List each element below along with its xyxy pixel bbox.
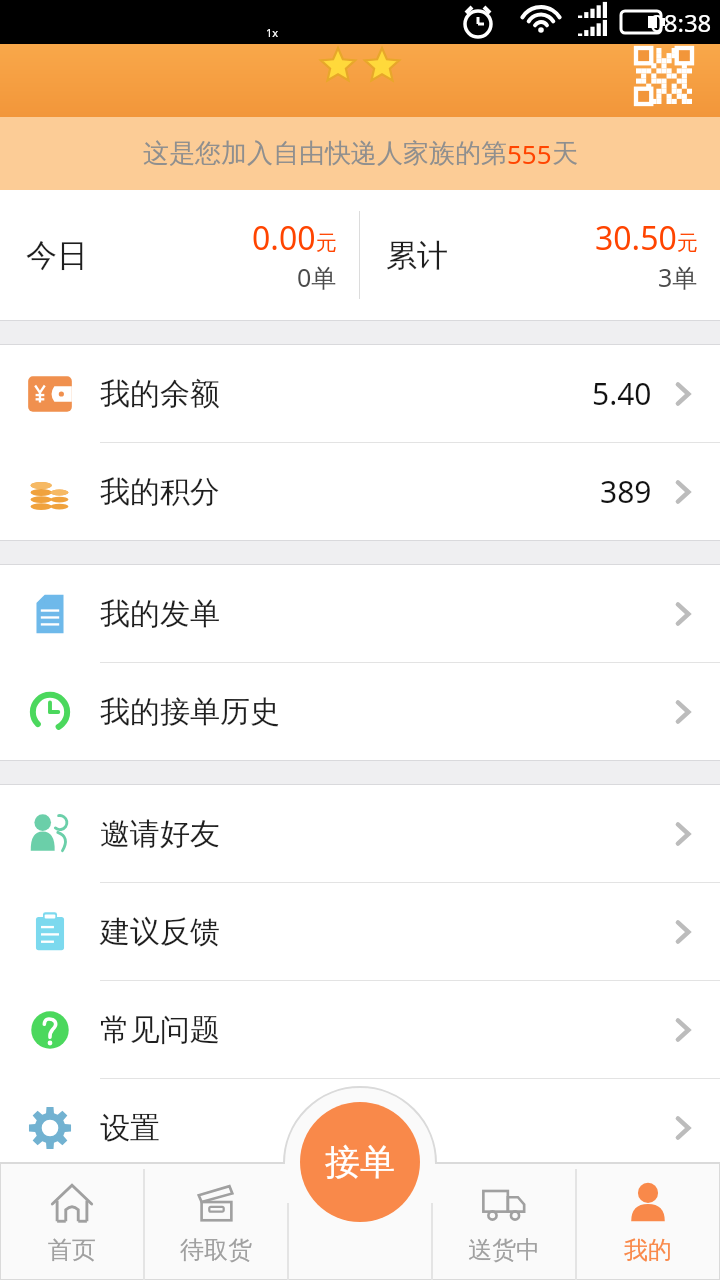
button[interactable]: 累计	[360, 190, 720, 320]
staticText: 累计	[386, 236, 448, 275]
staticText: 建议反馈	[100, 913, 220, 951]
button[interactable]: 送货中	[432, 1163, 576, 1280]
staticText: 首页	[48, 1235, 96, 1265]
staticText: 1x	[266, 25, 279, 40]
button[interactable]: 设置	[0, 1079, 720, 1176]
staticText: 待取货	[180, 1235, 252, 1265]
staticText: 我的余额	[100, 375, 220, 413]
staticText: 08:38	[650, 6, 712, 39]
button[interactable]: 建议反馈	[0, 883, 720, 980]
staticText: 常见问题	[100, 1011, 220, 1049]
button[interactable]: 首页	[0, 1163, 144, 1280]
button[interactable]: 常见问题	[0, 981, 720, 1078]
staticText: 我的发单	[100, 595, 220, 633]
button[interactable]: 我的积分	[0, 443, 720, 540]
staticText: 3单	[658, 260, 698, 294]
button[interactable]: 我的	[576, 1163, 720, 1280]
button[interactable]: 待取货	[144, 1163, 288, 1280]
button[interactable]: Rating stars	[312, 44, 408, 94]
staticText: 30.50	[595, 216, 677, 260]
staticText: 我的接单历史	[100, 693, 280, 731]
staticText: 元	[677, 230, 698, 256]
staticText: 邀请好友	[100, 815, 220, 853]
button[interactable]: 我的接单历史	[0, 663, 720, 760]
button[interactable]: 今日	[0, 190, 359, 320]
staticText: 我的	[624, 1235, 672, 1265]
button[interactable]: 我的发单	[0, 565, 720, 662]
staticText: 今日	[26, 236, 88, 275]
staticText: 接单	[325, 1140, 395, 1184]
button[interactable]: QR code	[636, 48, 692, 104]
staticText: 设置	[100, 1109, 160, 1147]
staticText: 0.00	[252, 216, 316, 260]
staticText: 0单	[297, 260, 337, 294]
staticText: 元	[316, 230, 337, 256]
button[interactable]: 邀请好友	[0, 785, 720, 882]
staticText: 我的积分	[100, 473, 220, 511]
button[interactable]: 我的余额	[0, 345, 720, 442]
staticText: 送货中	[468, 1235, 540, 1265]
staticText: 5.40	[592, 373, 652, 414]
staticText: 这是您加入自由快递人家族的第	[143, 137, 507, 170]
staticText: 天	[552, 137, 578, 170]
staticText: 555	[507, 136, 552, 171]
button[interactable]: 接单	[300, 1102, 420, 1222]
staticText: 389	[600, 471, 652, 512]
